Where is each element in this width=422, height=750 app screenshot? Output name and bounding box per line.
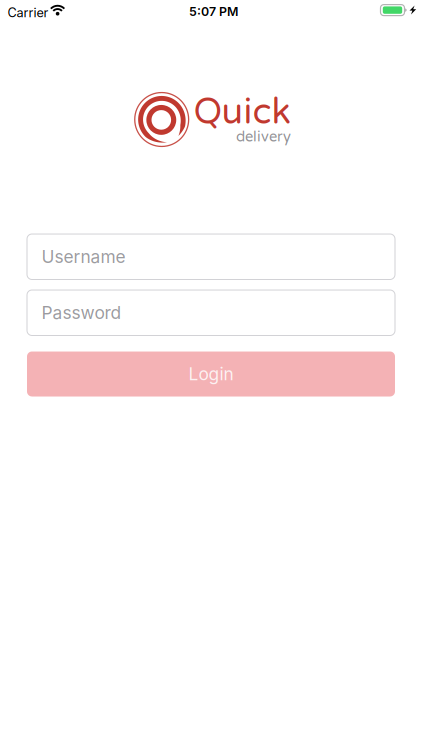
staticText: Username [41, 246, 125, 267]
staticText: Password [41, 302, 121, 323]
staticText: Quick [193, 91, 290, 133]
staticText: 5:07 PM [189, 4, 238, 19]
button[interactable]: Password [27, 290, 395, 335]
button[interactable]: Login [27, 351, 395, 396]
button[interactable]: Username [27, 234, 395, 279]
staticText: delivery [236, 128, 291, 146]
staticText: Carrier [7, 5, 48, 20]
staticText: Login [188, 363, 233, 384]
